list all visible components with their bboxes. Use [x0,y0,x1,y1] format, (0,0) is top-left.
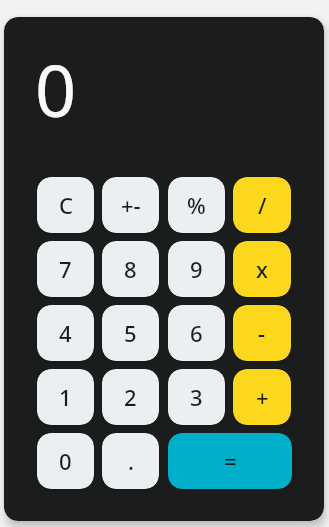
button[interactable]: . [102,433,159,489]
button[interactable]: +- [102,177,159,233]
staticText: 5 [124,318,137,348]
button[interactable]: - [233,305,291,361]
button[interactable]: 4 [37,305,94,361]
button[interactable]: + [233,369,291,425]
button[interactable]: 8 [102,241,159,297]
staticText: 0 [35,40,77,138]
button[interactable]: % [168,177,225,233]
staticText: 8 [124,254,137,284]
staticText: 3 [190,382,203,412]
button[interactable]: 0 [37,433,94,489]
button[interactable]: 3 [168,369,225,425]
button[interactable]: 2 [102,369,159,425]
staticText: 0 [59,446,72,476]
staticText: 7 [59,254,72,284]
staticText: 4 [59,318,72,348]
staticText: - [258,318,266,348]
staticText: / [258,190,267,220]
staticText: 1 [59,382,72,412]
staticText: = [224,446,237,476]
button[interactable]: x [233,241,291,297]
button[interactable]: = [168,433,292,489]
staticText: + [256,382,269,412]
staticText: 2 [124,382,137,412]
button[interactable]: 9 [168,241,225,297]
staticText: % [187,190,206,220]
button[interactable]: 1 [37,369,94,425]
staticText: . [128,446,134,476]
button[interactable]: 5 [102,305,159,361]
staticText: 9 [190,254,203,284]
staticText: 6 [190,318,203,348]
staticText: C [59,190,73,220]
staticText: +- [121,190,141,220]
button[interactable]: / [233,177,291,233]
button[interactable]: 7 [37,241,94,297]
button[interactable]: 6 [168,305,225,361]
button[interactable]: C [37,177,94,233]
staticText: x [256,254,268,284]
